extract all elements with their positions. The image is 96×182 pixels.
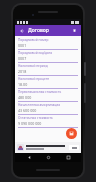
button[interactable]: Home bbox=[42, 153, 54, 162]
staticText: 43 600 000 bbox=[18, 108, 37, 113]
staticText: Порядковый номер bbox=[18, 38, 49, 42]
button[interactable]: Остаточная стоимость bbox=[18, 116, 78, 129]
staticText: 2018 bbox=[18, 69, 27, 74]
staticText: 18.00 bbox=[18, 82, 28, 87]
button[interactable]: Порядковый код/дата bbox=[18, 51, 78, 64]
staticText: 9 090 000 000 bbox=[18, 121, 42, 126]
staticText: Начисленная амортизация bbox=[18, 103, 61, 107]
staticText: 0007 bbox=[18, 56, 27, 61]
button[interactable]: Первоначальная стоимость bbox=[18, 90, 78, 103]
staticText: Порядковый код/дата bbox=[18, 51, 52, 55]
button[interactable]: Начисленная амортизация bbox=[18, 103, 78, 116]
staticText: Первоначальная стоимость bbox=[18, 90, 62, 94]
button[interactable]: Налоговый период bbox=[18, 64, 78, 77]
button[interactable]: Delete bbox=[71, 27, 78, 34]
button[interactable] bbox=[69, 145, 79, 150]
button[interactable]: Порядковый номер bbox=[18, 38, 78, 51]
staticText: 480 000 bbox=[18, 95, 32, 100]
staticText: Налоговый период bbox=[18, 64, 48, 68]
button[interactable]: Back bbox=[23, 153, 35, 162]
button[interactable]: Save bbox=[66, 128, 77, 139]
button[interactable]: Recent apps bbox=[62, 153, 74, 162]
staticText: Договор bbox=[28, 27, 49, 34]
staticText: 0001 bbox=[18, 43, 27, 48]
button[interactable]: Налоговый процент bbox=[18, 77, 78, 90]
staticText: Остаточная стоимость bbox=[18, 116, 53, 120]
staticText: Налоговый процент bbox=[18, 77, 50, 81]
button[interactable] bbox=[15, 142, 81, 153]
button[interactable]: Back bbox=[18, 27, 25, 34]
